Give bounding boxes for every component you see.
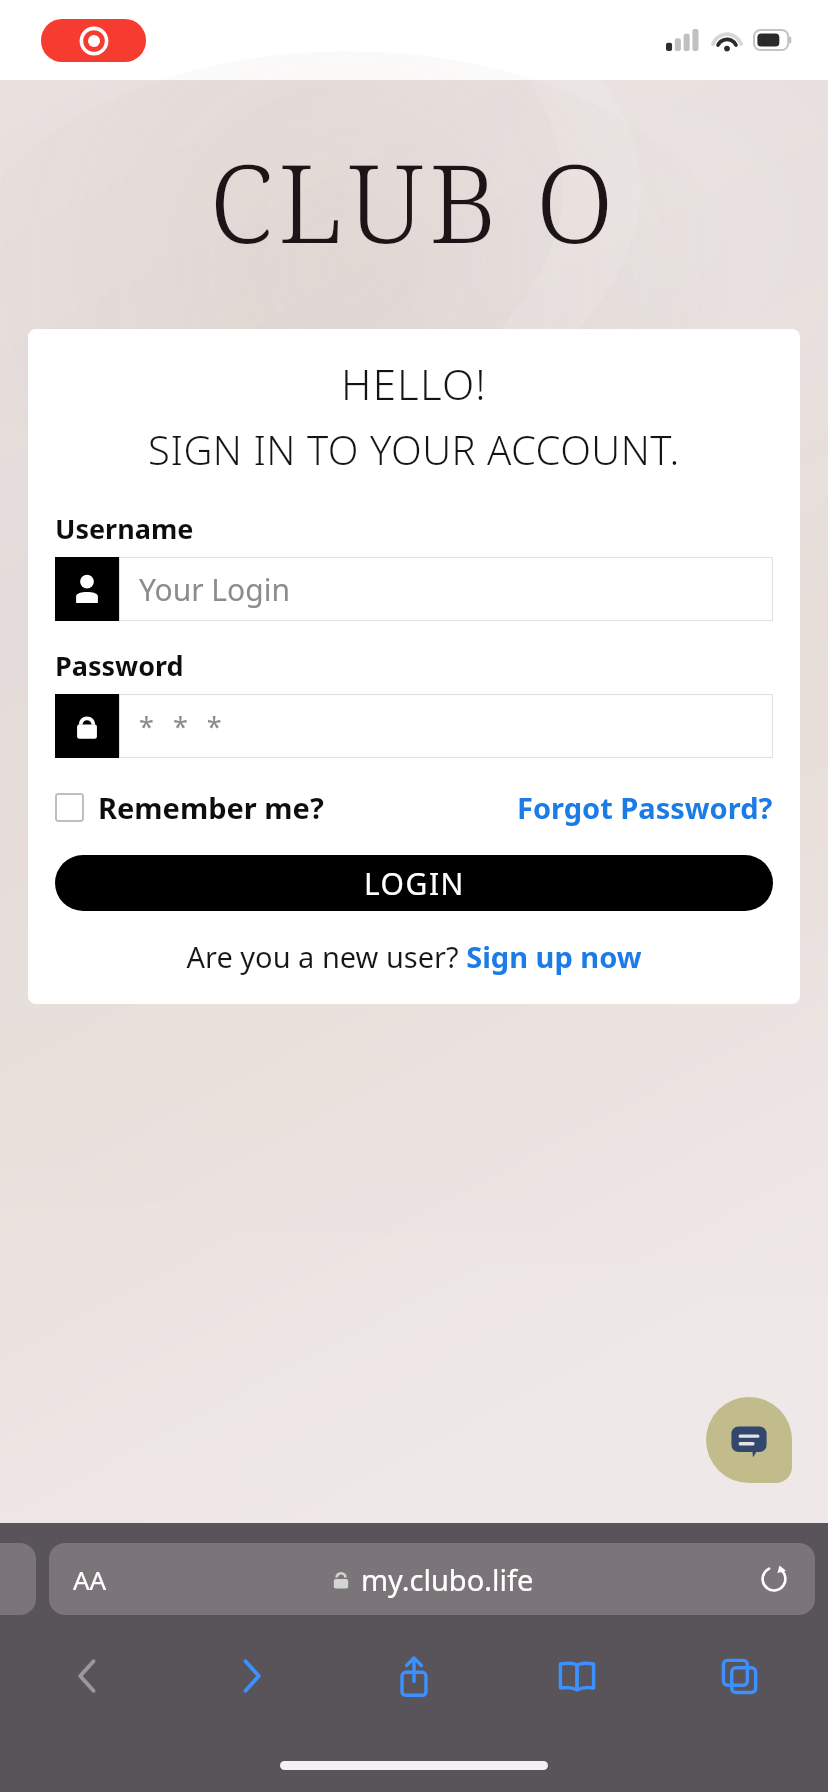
staticText: Forgot Password? <box>517 788 773 827</box>
button[interactable]: Open chat <box>706 1397 792 1483</box>
button[interactable]: LOGIN <box>55 855 773 911</box>
button[interactable]: Forward <box>181 1637 321 1715</box>
staticText: Username <box>55 510 194 547</box>
staticText: AA <box>73 1562 107 1597</box>
staticText: LOGIN <box>364 863 465 904</box>
button[interactable]: Share <box>344 1637 484 1715</box>
button[interactable]: AA <box>49 1543 815 1615</box>
button[interactable]: Your Login <box>55 557 773 621</box>
staticText: * * * <box>139 708 228 745</box>
staticText: my.clubo.life <box>361 1560 534 1599</box>
staticText: HELLO! <box>28 355 800 412</box>
button[interactable]: Tabs <box>670 1637 810 1715</box>
button[interactable]: Forgot Password? <box>517 788 773 827</box>
button[interactable]: Are you a new user? Sign up now <box>186 937 642 976</box>
staticText: SIGN IN TO YOUR ACCOUNT. <box>28 422 800 476</box>
button[interactable] <box>0 1543 36 1615</box>
button[interactable]: Bookmarks <box>507 1637 647 1715</box>
staticText: CLUB O <box>0 128 828 275</box>
button[interactable]: Recording indicator <box>41 19 146 62</box>
button[interactable]: * * * <box>55 694 773 758</box>
staticText: Remember me? <box>98 788 324 827</box>
button[interactable]: Back <box>18 1637 158 1715</box>
staticText: Are you a new user? Sign up now <box>186 937 642 976</box>
button[interactable]: Reload <box>757 1562 791 1596</box>
button[interactable]: Remember me? <box>55 788 324 827</box>
staticText: Your Login <box>139 569 290 610</box>
staticText: Password <box>55 647 184 684</box>
